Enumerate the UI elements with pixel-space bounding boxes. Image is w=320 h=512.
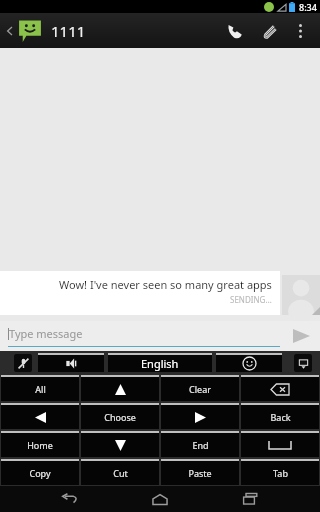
button[interactable]: Wow! I've never seen so many great apps [0,271,280,315]
button[interactable]: Copy [1,459,79,485]
button[interactable] [241,375,319,401]
button[interactable]: Tab [241,459,319,485]
button[interactable]: All [1,375,79,401]
staticText: Wow! I've never seen so many great apps [59,277,272,292]
staticText: SENDING… [230,294,272,305]
button[interactable]: Type message [8,326,280,347]
button[interactable]: Back [241,403,319,429]
button[interactable]: Paste [161,459,239,485]
button[interactable]: Clear [161,375,239,401]
button[interactable]: End [161,431,239,457]
button[interactable]: Home [1,431,79,457]
button[interactable] [216,353,282,372]
button[interactable]: Send [288,323,314,349]
staticText: Choose [104,411,136,423]
button[interactable]: Choose [81,403,159,429]
button[interactable]: Cut [81,459,159,485]
staticText: All [35,383,46,395]
staticText: 8:34 [299,1,317,13]
button[interactable] [81,431,159,457]
button[interactable] [161,403,239,429]
button[interactable]: English [108,353,212,372]
button[interactable]: Voice input [14,354,32,372]
button[interactable]: Attach [252,14,286,48]
button[interactable] [241,431,319,457]
staticText: Back [270,411,291,423]
staticText: Type message [9,326,83,341]
staticText: Copy [29,467,51,479]
staticText: Home [27,439,53,451]
button[interactable]: Back [50,486,90,512]
button[interactable] [81,375,159,401]
staticText: Clear [189,383,211,395]
button[interactable]: Call [218,14,252,48]
staticText: Tab [273,467,288,479]
button[interactable]: More options [286,17,314,45]
staticText: English [141,356,179,371]
button[interactable]: Recent apps [230,486,270,512]
button[interactable]: Home [140,486,180,512]
button[interactable] [38,353,104,372]
staticText: End [192,439,209,451]
button[interactable]: Hide keyboard [294,354,312,372]
staticText: 1111 [51,21,86,41]
staticText: Paste [188,467,212,479]
staticText: Cut [113,467,128,479]
button[interactable] [1,403,79,429]
